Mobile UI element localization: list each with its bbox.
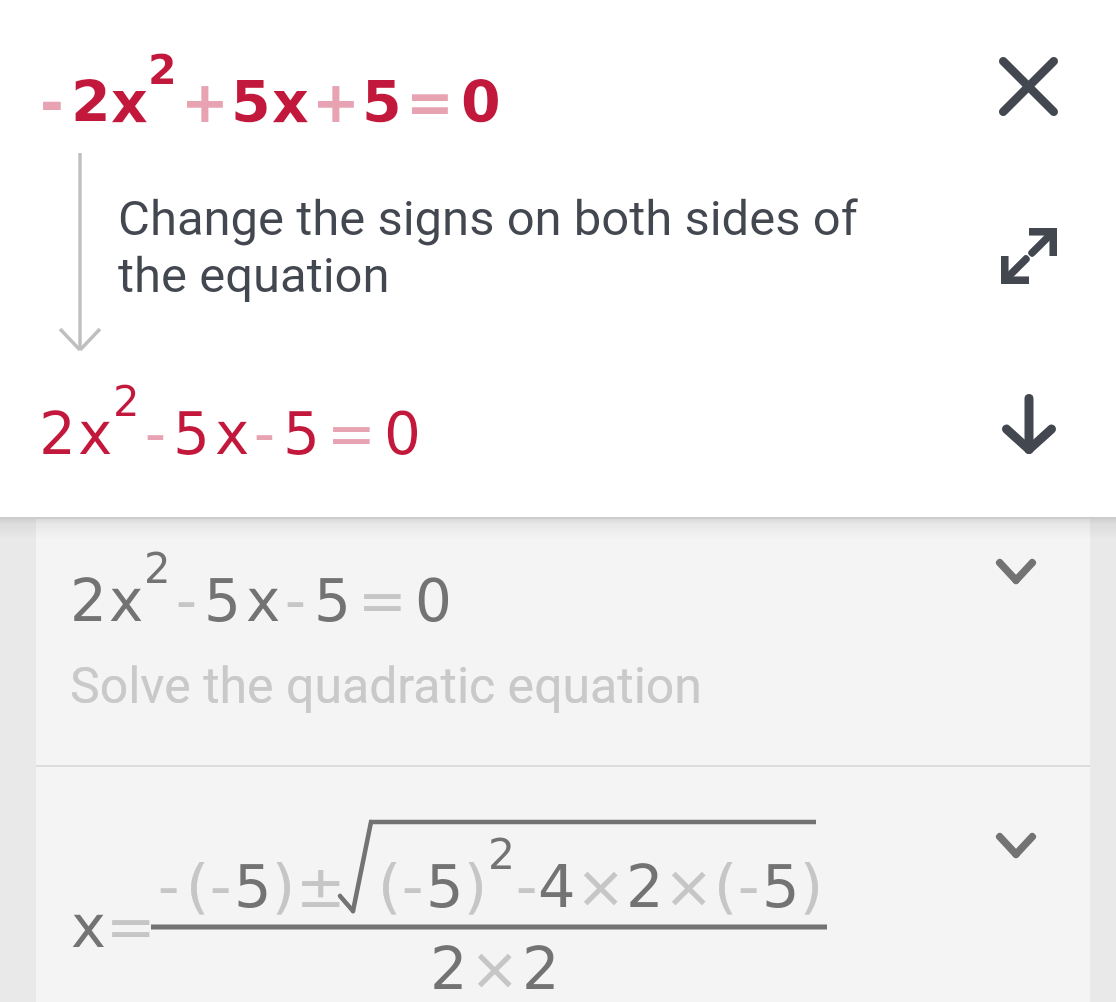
- staticText: =: [106, 892, 156, 961]
- staticText: x: [71, 892, 106, 961]
- staticText: (: [186, 852, 210, 921]
- button[interactable]: Collapse step: [36, 767, 1090, 1002]
- staticText: +: [312, 69, 360, 135]
- staticText: 4: [538, 852, 576, 921]
- staticText: x: [215, 400, 250, 468]
- staticText: -: [738, 852, 760, 921]
- staticText: ): [800, 852, 824, 921]
- staticText: 0: [384, 400, 421, 468]
- staticText: 5: [204, 567, 241, 635]
- staticText: 2: [488, 830, 516, 879]
- staticText: -: [516, 852, 538, 921]
- staticText: 2: [522, 934, 560, 1002]
- staticText: 2: [39, 400, 76, 468]
- button[interactable]: 2: [36, 519, 1090, 765]
- staticText: -: [285, 567, 306, 635]
- staticText: x: [78, 400, 113, 468]
- staticText: =: [358, 567, 407, 635]
- staticText: x: [109, 567, 144, 635]
- staticText: 0: [415, 567, 452, 635]
- staticText: -: [176, 567, 197, 635]
- staticText: ×: [470, 934, 520, 1002]
- staticText: x: [246, 567, 281, 635]
- staticText: 2: [144, 544, 171, 593]
- staticText: 0: [461, 69, 501, 135]
- staticText: =: [327, 400, 376, 468]
- staticText: 2: [70, 567, 107, 635]
- staticText: 2: [113, 377, 140, 426]
- staticText: 2: [148, 46, 177, 94]
- staticText: 5: [173, 400, 210, 468]
- staticText: ×: [664, 852, 714, 921]
- staticText: 2: [430, 934, 468, 1002]
- staticText: -: [402, 852, 424, 921]
- button[interactable]: Next step: [979, 374, 1079, 474]
- staticText: =: [406, 69, 454, 135]
- staticText: Change the signs on both sides of the eq…: [118, 190, 888, 304]
- staticText: -: [210, 852, 232, 921]
- staticText: -: [158, 852, 180, 921]
- staticText: x: [272, 69, 309, 135]
- staticText: -: [145, 400, 166, 468]
- staticText: 5: [362, 69, 402, 135]
- button[interactable]: Close: [978, 36, 1078, 136]
- staticText: ±: [296, 852, 346, 921]
- staticText: 5: [426, 852, 464, 921]
- staticText: 2: [71, 69, 111, 135]
- staticText: (: [714, 852, 738, 921]
- staticText: ): [272, 852, 296, 921]
- staticText: ): [464, 852, 488, 921]
- staticText: -: [40, 69, 64, 135]
- button[interactable]: Collapse step: [976, 531, 1056, 611]
- staticText: -: [254, 400, 275, 468]
- button[interactable]: Expand: [979, 206, 1079, 306]
- staticText: +: [181, 69, 229, 135]
- staticText: (: [378, 852, 402, 921]
- button[interactable]: Collapse step: [976, 805, 1056, 885]
- staticText: ×: [576, 852, 626, 921]
- staticText: 5: [283, 400, 320, 468]
- staticText: 5: [234, 852, 272, 921]
- staticText: 5: [314, 567, 351, 635]
- staticText: 2: [626, 852, 664, 921]
- staticText: 5: [231, 69, 271, 135]
- staticText: 5: [762, 852, 800, 921]
- staticText: Solve the quadratic equation: [70, 657, 702, 716]
- staticText: x: [111, 69, 148, 135]
